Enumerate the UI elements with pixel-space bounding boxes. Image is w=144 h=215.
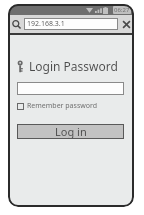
button[interactable]: Log in: [17, 124, 124, 139]
button[interactable]: Remember password: [17, 101, 98, 111]
button[interactable]: [17, 82, 124, 95]
staticText: 06:27: [114, 6, 130, 14]
staticText: Login Password: [29, 58, 118, 74]
button[interactable]: 192.168.3.1: [24, 18, 118, 30]
staticText: Remember password: [27, 101, 98, 111]
staticText: Log in: [55, 124, 87, 139]
button[interactable]: Close: [118, 16, 134, 32]
staticText: 192.168.3.1: [27, 19, 65, 29]
button[interactable]: Search: [8, 16, 24, 32]
